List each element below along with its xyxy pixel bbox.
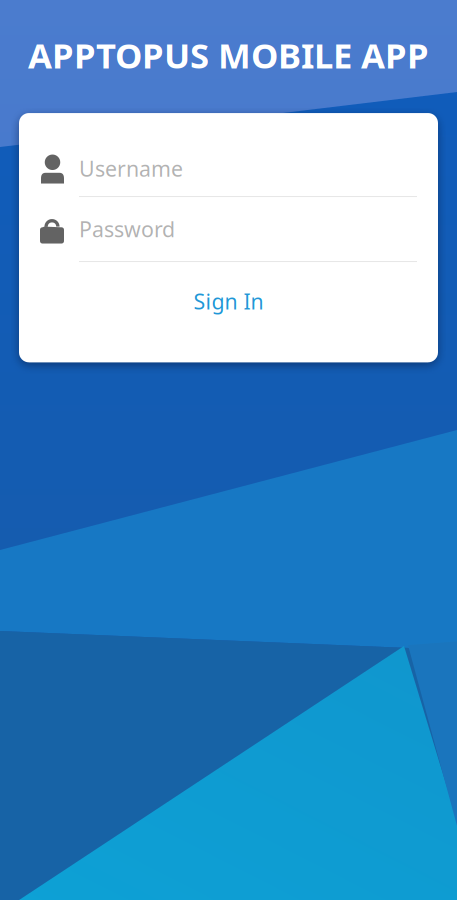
staticText: APPTOPUS MOBILE APP	[28, 32, 429, 78]
staticText: Username	[79, 154, 183, 183]
staticText: Sign In	[193, 287, 263, 315]
staticText: Password	[79, 215, 175, 243]
button[interactable]: Sign In	[40, 269, 417, 333]
